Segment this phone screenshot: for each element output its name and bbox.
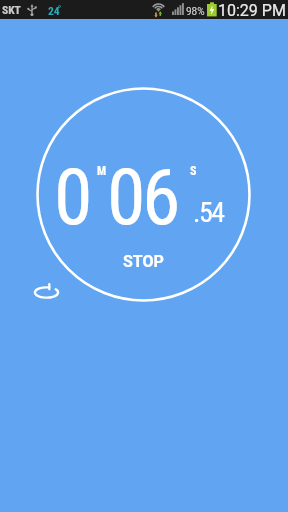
staticText: 06	[107, 152, 178, 243]
staticText: 0	[54, 152, 90, 243]
staticText: M	[97, 164, 107, 178]
staticText: SKT	[2, 3, 21, 16]
staticText: 24	[48, 4, 60, 17]
staticText: 98%	[186, 6, 205, 18]
button[interactable]: STOP	[103, 243, 183, 279]
button[interactable]	[30, 278, 64, 308]
staticText: S	[190, 164, 197, 178]
staticText: .54	[193, 196, 224, 229]
staticText: 10:29 PM	[218, 1, 286, 20]
staticText: STOP	[123, 252, 164, 271]
